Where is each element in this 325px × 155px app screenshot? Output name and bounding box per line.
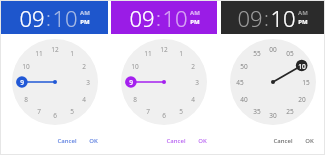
button[interactable]: 10 [52, 3, 78, 33]
staticText: 20 [298, 95, 306, 104]
button[interactable]: PM [298, 18, 308, 26]
button[interactable]: OK [195, 135, 210, 147]
staticText: AM [298, 9, 308, 17]
button[interactable]: Cancel [54, 135, 80, 147]
staticText: 1 [70, 49, 74, 58]
staticText: : [156, 5, 161, 32]
button[interactable]: OK [302, 135, 317, 147]
staticText: 10 [162, 3, 188, 33]
staticText: PM [298, 18, 308, 26]
staticText: Cancel [57, 137, 77, 145]
staticText: 55 [253, 49, 261, 58]
button[interactable]: AM [298, 9, 308, 17]
staticText: 25 [286, 107, 294, 116]
staticText: 10 [298, 62, 306, 71]
button[interactable]: Cancel [163, 135, 189, 147]
staticText: PM [190, 18, 200, 26]
staticText: 09 [19, 3, 45, 33]
staticText: 10 [270, 3, 296, 33]
button[interactable]: 09 [129, 3, 155, 33]
staticText: 2 [191, 62, 195, 71]
staticText: 5 [70, 107, 74, 116]
button[interactable]: Clock dial [12, 39, 98, 125]
staticText: OK [89, 137, 98, 145]
staticText: OK [198, 137, 207, 145]
button[interactable]: PM [190, 18, 200, 26]
staticText: 3 [195, 78, 199, 87]
button[interactable]: 09 [237, 3, 263, 33]
staticText: PM [80, 18, 90, 26]
staticText: 9 [129, 78, 133, 87]
staticText: 09 [129, 3, 155, 33]
staticText: OK [305, 137, 314, 145]
staticText: 00 [269, 45, 277, 54]
button[interactable]: AM [80, 9, 90, 17]
staticText: 6 [162, 111, 166, 120]
staticText: 4 [82, 95, 86, 104]
staticText: 12 [160, 45, 168, 54]
staticText: Cancel [166, 137, 186, 145]
staticText: 30 [269, 111, 277, 120]
button[interactable]: Clock dial [230, 39, 316, 125]
staticText: 8 [133, 95, 137, 104]
staticText: 11 [144, 49, 152, 58]
staticText: : [46, 5, 51, 32]
staticText: 05 [286, 49, 294, 58]
staticText: 3 [86, 78, 90, 87]
staticText: 50 [240, 62, 248, 71]
staticText: 7 [37, 107, 41, 116]
button[interactable]: Clock dial [121, 39, 207, 125]
staticText: 9 [20, 78, 24, 87]
staticText: 45 [236, 78, 244, 87]
staticText: AM [80, 9, 90, 17]
button[interactable]: PM [80, 18, 90, 26]
button[interactable]: 10 [162, 3, 188, 33]
staticText: 4 [191, 95, 195, 104]
staticText: 1 [179, 49, 183, 58]
button[interactable]: 10 [270, 3, 296, 33]
staticText: 10 [131, 62, 139, 71]
button[interactable]: OK [86, 135, 101, 147]
staticText: 35 [253, 107, 261, 116]
staticText: 15 [302, 78, 310, 87]
staticText: 09 [237, 3, 263, 33]
staticText: AM [190, 9, 200, 17]
staticText: 12 [51, 45, 59, 54]
staticText: 6 [53, 111, 57, 120]
staticText: : [264, 5, 269, 32]
staticText: 7 [146, 107, 150, 116]
staticText: Cancel [273, 137, 293, 145]
staticText: 10 [22, 62, 30, 71]
button[interactable]: AM [190, 9, 200, 17]
button[interactable]: 09 [19, 3, 45, 33]
staticText: 11 [35, 49, 43, 58]
staticText: 5 [179, 107, 183, 116]
staticText: 10 [52, 3, 78, 33]
button[interactable]: Cancel [270, 135, 296, 147]
staticText: 8 [24, 95, 28, 104]
staticText: 40 [240, 95, 248, 104]
staticText: 2 [82, 62, 86, 71]
